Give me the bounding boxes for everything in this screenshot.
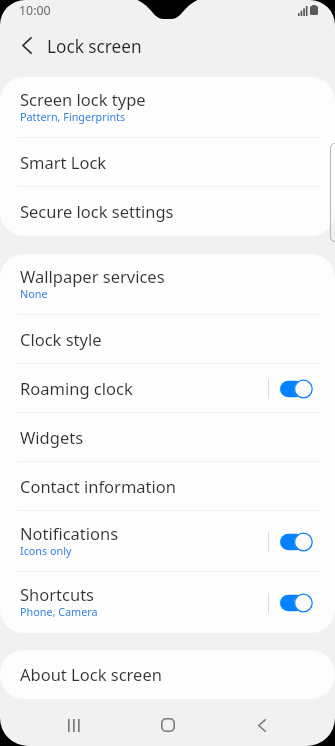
button[interactable]: Secure lock settings bbox=[0, 187, 335, 236]
button[interactable]: Notifications bbox=[0, 511, 335, 572]
button[interactable]: Roaming clock bbox=[0, 364, 335, 413]
staticText: Icons only bbox=[20, 543, 72, 558]
staticText: Pattern, Fingerprints bbox=[20, 109, 126, 124]
staticText: About Lock screen bbox=[20, 663, 162, 685]
button[interactable]: Smart Lock bbox=[0, 138, 335, 187]
staticText: Wallpaper services bbox=[20, 265, 165, 287]
button[interactable]: Shortcuts bbox=[0, 572, 335, 633]
button[interactable]: Home bbox=[150, 711, 186, 739]
staticText: Screen lock type bbox=[20, 88, 146, 110]
button[interactable]: Back bbox=[13, 31, 41, 59]
staticText: 10:00 bbox=[19, 2, 51, 19]
staticText: Roaming clock bbox=[20, 377, 133, 399]
staticText: Clock style bbox=[20, 328, 102, 350]
button[interactable]: Recent apps bbox=[56, 711, 92, 739]
staticText: Lock screen bbox=[47, 35, 142, 58]
button[interactable]: Toggle Roaming clock bbox=[280, 379, 313, 399]
button[interactable]: Wallpaper services bbox=[0, 254, 335, 315]
staticText: Notifications bbox=[20, 522, 119, 544]
button[interactable]: Toggle Shortcuts bbox=[280, 593, 313, 613]
button[interactable]: Toggle Notifications bbox=[280, 532, 313, 552]
button[interactable]: Screen lock type bbox=[0, 77, 335, 138]
button[interactable]: Widgets bbox=[0, 413, 335, 462]
staticText: Contact information bbox=[20, 475, 176, 497]
button[interactable]: About Lock screen bbox=[0, 650, 335, 699]
staticText: Secure lock settings bbox=[20, 200, 174, 222]
staticText: Widgets bbox=[20, 426, 84, 448]
staticText: Shortcuts bbox=[20, 583, 94, 605]
button[interactable]: Back bbox=[244, 711, 280, 739]
button[interactable]: Clock style bbox=[0, 315, 335, 364]
button[interactable]: Contact information bbox=[0, 462, 335, 511]
staticText: None bbox=[20, 286, 48, 301]
staticText: Smart Lock bbox=[20, 151, 107, 173]
staticText: Phone, Camera bbox=[20, 604, 98, 619]
